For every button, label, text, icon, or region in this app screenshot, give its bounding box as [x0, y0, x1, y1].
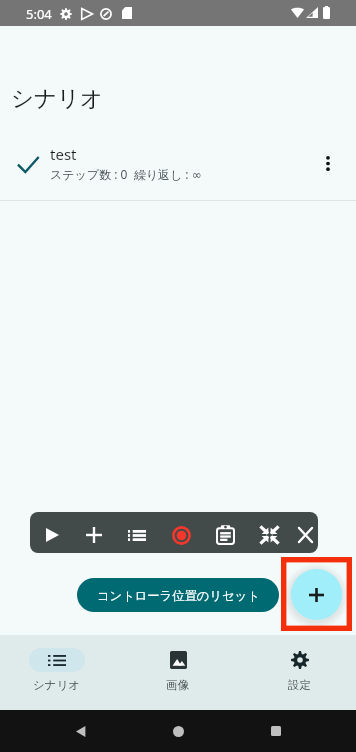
button[interactable]: シナリオ [0, 635, 118, 710]
button[interactable]: More options [306, 145, 346, 185]
button[interactable]: Back [64, 714, 98, 748]
staticText: ステップ数 : 0 繰り返し : ∞ [50, 166, 202, 182]
button[interactable]: Add [74, 515, 114, 553]
button[interactable]: Collapse [249, 515, 289, 553]
staticText: 5:04 [26, 5, 52, 23]
staticText: 設定 [288, 678, 311, 692]
button[interactable]: 画像 [118, 635, 237, 710]
button[interactable]: Play [32, 515, 72, 553]
button[interactable]: コントローラ位置のリセット [77, 578, 279, 612]
button[interactable]: Add [291, 569, 342, 620]
button[interactable]: test [0, 134, 356, 196]
staticText: シナリオ [11, 84, 104, 112]
button[interactable]: Record [161, 515, 201, 553]
button[interactable]: Clipboard [205, 515, 245, 553]
staticText: 画像 [166, 678, 189, 692]
staticText: test [50, 144, 77, 164]
button[interactable]: Steps [117, 515, 157, 553]
button[interactable]: 設定 [237, 635, 356, 710]
button[interactable]: Recents [259, 714, 293, 748]
staticText: シナリオ [33, 678, 81, 692]
button[interactable]: Home [161, 714, 195, 748]
staticText: コントローラ位置のリセット [97, 588, 260, 603]
button[interactable]: Close [285, 515, 318, 553]
